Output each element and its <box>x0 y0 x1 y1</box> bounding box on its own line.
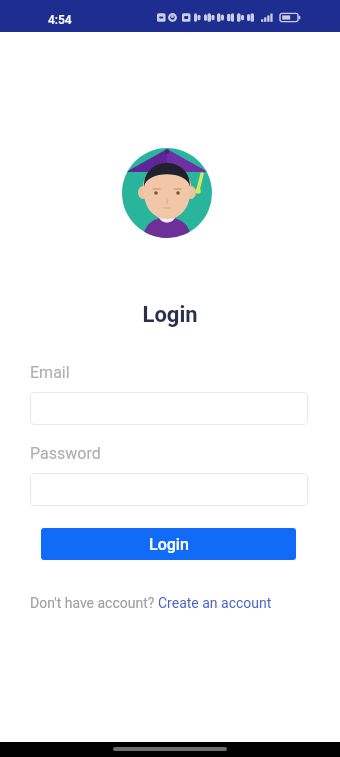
button[interactable]: Login <box>41 528 296 560</box>
staticText: 4:54 <box>48 13 72 27</box>
staticText: Password <box>30 444 101 463</box>
button[interactable]: Don't have account? <box>30 595 272 611</box>
staticText: Email <box>30 363 70 382</box>
other: Status icons <box>156 12 306 23</box>
staticText: Don't have account? <box>30 595 158 611</box>
staticText: Login <box>0 302 340 328</box>
staticText: Create an account <box>158 595 272 611</box>
button[interactable] <box>30 473 308 506</box>
staticText: Login <box>149 535 189 554</box>
other: Home <box>113 747 227 751</box>
button[interactable] <box>30 392 308 425</box>
